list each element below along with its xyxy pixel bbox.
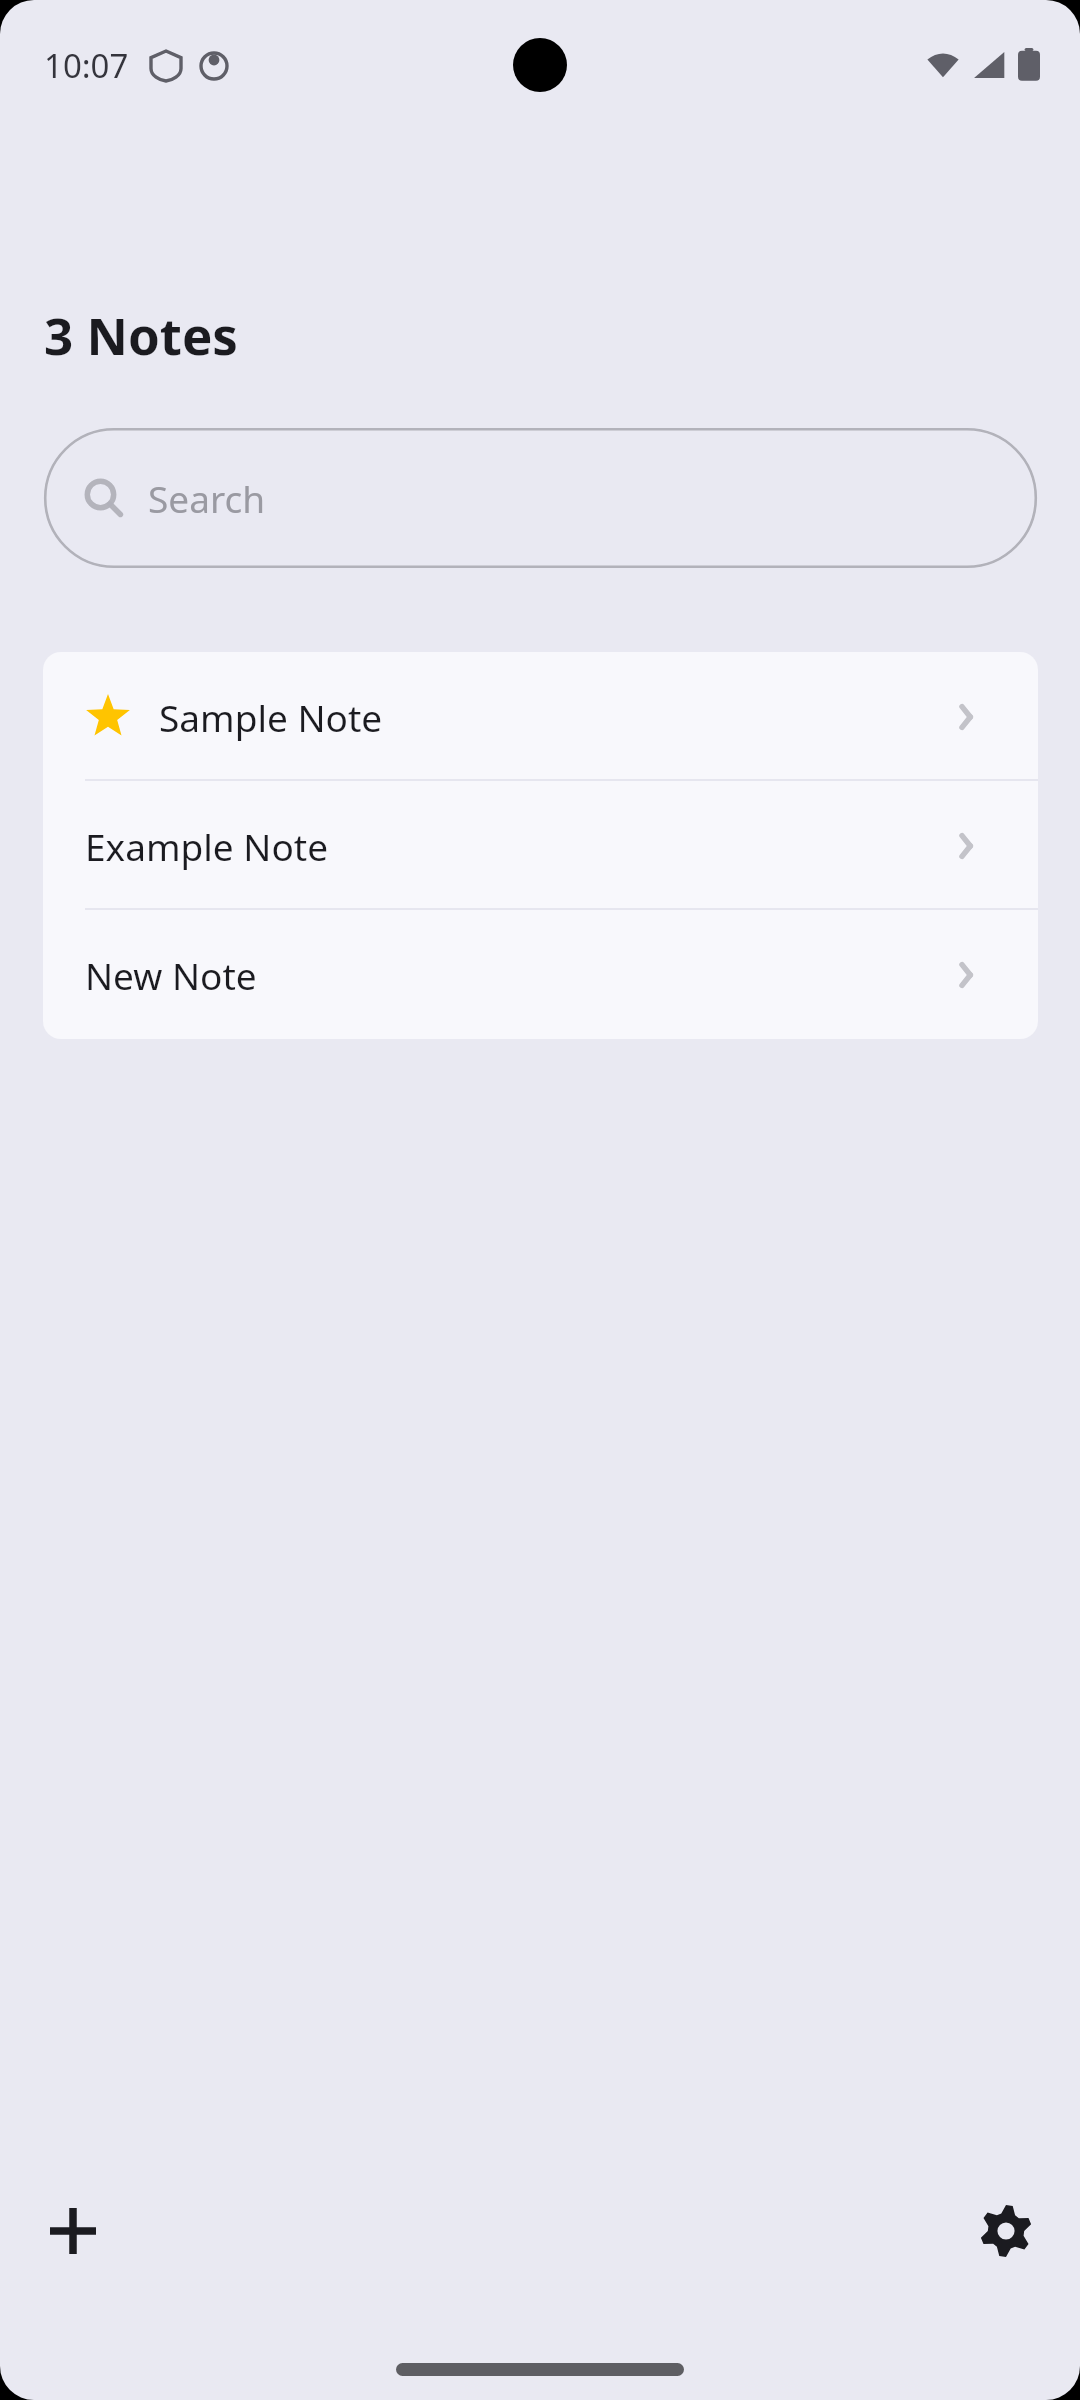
- staticText: 10:07: [44, 43, 129, 88]
- button[interactable]: Search: [44, 428, 1037, 568]
- staticText: New Note: [85, 950, 257, 1000]
- button[interactable]: New Note: [43, 910, 1038, 1039]
- staticText: Sample Note: [159, 692, 383, 742]
- staticText: Search: [148, 473, 266, 523]
- button[interactable]: Example Note: [43, 781, 1038, 910]
- staticText: Example Note: [85, 821, 329, 871]
- button[interactable]: Add note: [23, 2181, 123, 2281]
- button[interactable]: Sample Note: [43, 652, 1038, 781]
- staticText: 3 Notes: [44, 300, 238, 369]
- button[interactable]: Settings: [956, 2181, 1056, 2281]
